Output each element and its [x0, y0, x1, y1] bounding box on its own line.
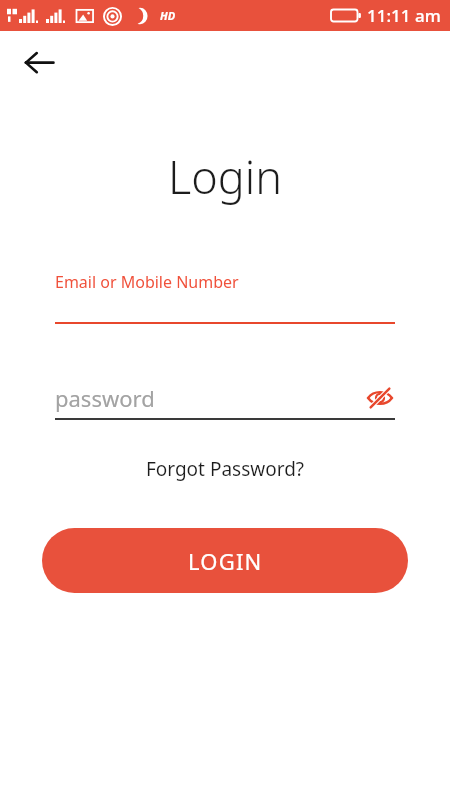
button[interactable]: Show password	[365, 383, 395, 413]
staticText: password	[55, 383, 155, 413]
staticText: Login	[0, 146, 450, 207]
button[interactable]: password	[55, 381, 395, 415]
staticText: Email or Mobile Number	[55, 271, 239, 293]
button[interactable]: Forgot Password?	[0, 453, 450, 485]
button[interactable]: Back	[18, 40, 62, 84]
staticText: LOGIN	[188, 546, 263, 576]
button[interactable]: LOGIN	[42, 528, 408, 593]
staticText: 11:11 am	[367, 4, 441, 27]
staticText: HD	[160, 8, 176, 23]
